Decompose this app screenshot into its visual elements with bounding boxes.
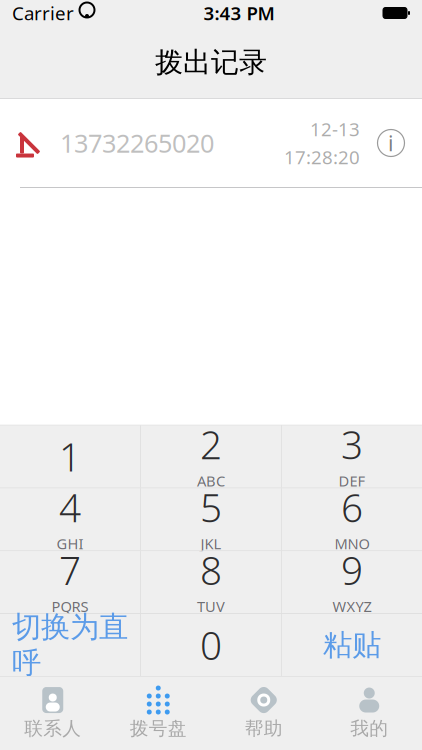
staticText: i xyxy=(388,129,394,157)
button[interactable]: 1 xyxy=(0,426,140,488)
staticText: 9 xyxy=(341,544,363,596)
staticText: 0 xyxy=(200,619,222,671)
staticText: 我的 xyxy=(350,717,388,740)
staticText: 3 xyxy=(341,419,363,470)
button[interactable]: 7 xyxy=(0,551,140,613)
staticText: MNO xyxy=(334,534,369,553)
staticText: 3:43 PM xyxy=(203,1,274,25)
button[interactable]: 粘贴 xyxy=(282,614,422,676)
button[interactable]: 帮助 xyxy=(211,676,316,750)
button[interactable]: 0 xyxy=(141,614,281,676)
staticText: 帮助 xyxy=(245,717,283,740)
staticText: 1 xyxy=(59,431,81,482)
staticText: 12-13 xyxy=(310,117,360,141)
staticText: 8 xyxy=(200,544,222,596)
staticText: 17:28:20 xyxy=(284,144,360,169)
staticText: JKL xyxy=(200,534,221,553)
staticText: 4 xyxy=(59,481,81,533)
button[interactable]: 2 xyxy=(141,426,281,488)
button[interactable]: 6 xyxy=(282,488,422,550)
button[interactable]: 4 xyxy=(0,488,140,550)
staticText: 2 xyxy=(200,419,222,470)
staticText: Carrier xyxy=(12,1,74,25)
button[interactable]: 拨号盘 xyxy=(105,676,211,750)
button[interactable]: 8 xyxy=(141,551,281,613)
button[interactable]: 切换为直呼 xyxy=(0,614,140,676)
button[interactable]: 联系人 xyxy=(0,676,105,750)
button[interactable]: 5 xyxy=(141,488,281,550)
staticText: TUV xyxy=(197,597,225,616)
staticText: 切换为直呼 xyxy=(12,609,128,681)
staticText: ABC xyxy=(197,471,225,490)
button[interactable]: 3 xyxy=(282,426,422,488)
button[interactable]: 13732265020 xyxy=(0,99,422,188)
button[interactable]: 9 xyxy=(282,551,422,613)
staticText: 拨出记录 xyxy=(155,45,267,80)
staticText: GHI xyxy=(57,534,84,553)
staticText: 5 xyxy=(200,481,222,533)
button[interactable]: 我的 xyxy=(316,676,422,750)
staticText: 7 xyxy=(59,544,81,596)
staticText: DEF xyxy=(338,471,365,490)
staticText: 粘贴 xyxy=(323,627,381,663)
staticText: 6 xyxy=(341,481,363,533)
staticText: PQRS xyxy=(52,597,89,616)
staticText: WXYZ xyxy=(332,597,371,616)
staticText: 联系人 xyxy=(24,717,81,740)
staticText: 13732265020 xyxy=(60,126,214,160)
staticText: 拨号盘 xyxy=(130,717,187,740)
